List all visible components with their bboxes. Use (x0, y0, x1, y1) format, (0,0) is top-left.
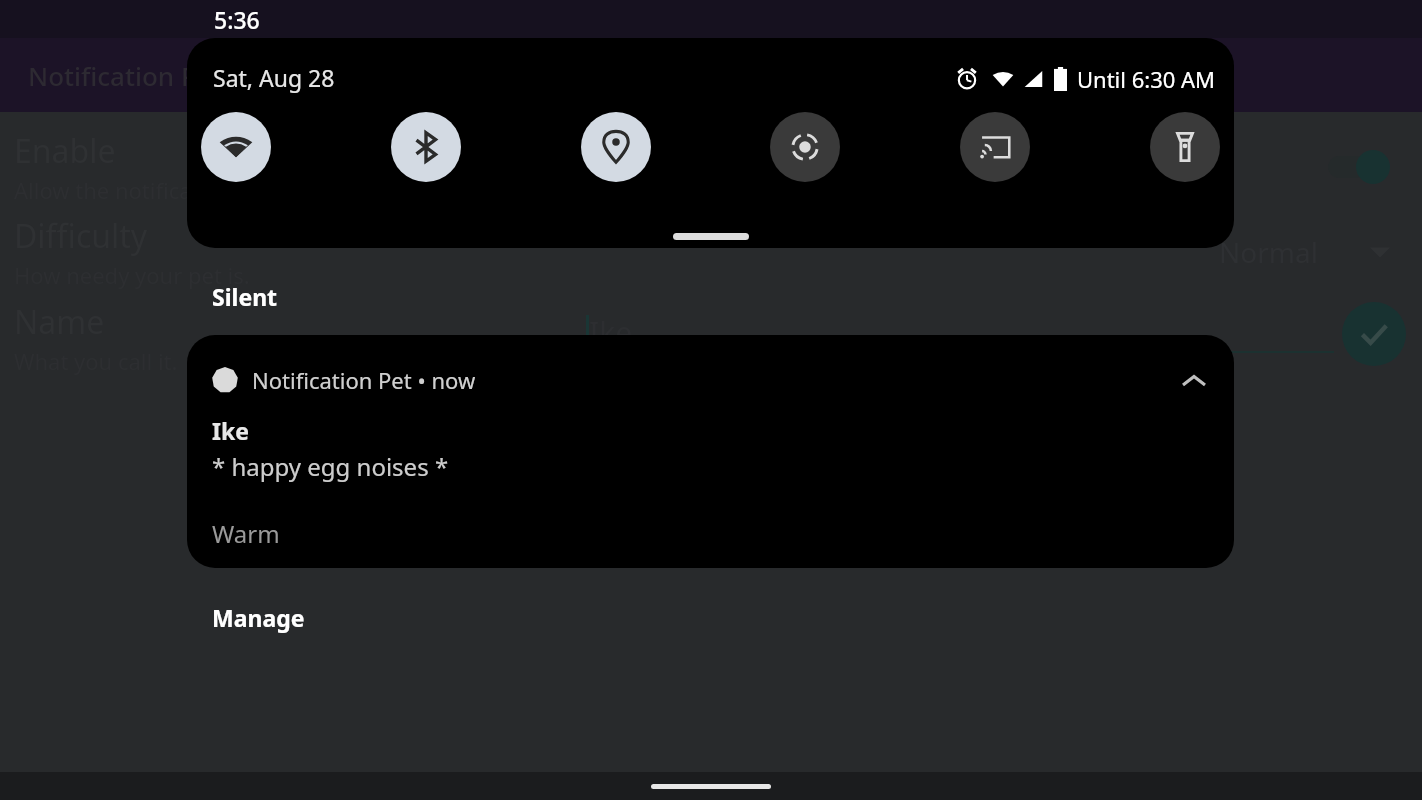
button[interactable] (1322, 147, 1394, 187)
staticText: Until 6:30 AM (1077, 64, 1216, 94)
button[interactable]: Difficulty (0, 211, 1422, 293)
button[interactable]: Location (581, 112, 651, 182)
button[interactable]: Manage (212, 602, 305, 633)
staticText: 5:36 (214, 4, 260, 35)
button[interactable]: Name (0, 297, 1422, 379)
staticText: Normal (1219, 233, 1318, 271)
button[interactable]: Collapse (1176, 363, 1212, 399)
staticText: Ike (589, 312, 633, 353)
button[interactable]: Auto rotate (770, 112, 840, 182)
staticText: Notification Pet • now (252, 365, 476, 395)
button[interactable]: Normal (1215, 233, 1394, 271)
staticText: Ike (212, 415, 249, 446)
button[interactable]: Wi-Fi (201, 112, 271, 182)
button[interactable]: Flashlight (1150, 112, 1220, 182)
staticText: Allow the notification. (14, 175, 239, 205)
button[interactable]: Enable (0, 126, 1422, 208)
button[interactable]: Cast screen (960, 112, 1030, 182)
button[interactable]: Bluetooth (391, 112, 461, 182)
staticText: Silent (212, 281, 278, 312)
staticText: How needy your pet is. (14, 260, 250, 290)
button[interactable]: Confirm (1342, 302, 1406, 366)
staticText: Notification Pet (28, 58, 222, 93)
staticText: * happy egg noises * (212, 450, 449, 483)
staticText: Warm (212, 517, 280, 550)
staticText: Sat, Aug 28 (213, 62, 335, 93)
button[interactable]: Notification Pet • now (187, 335, 1234, 568)
